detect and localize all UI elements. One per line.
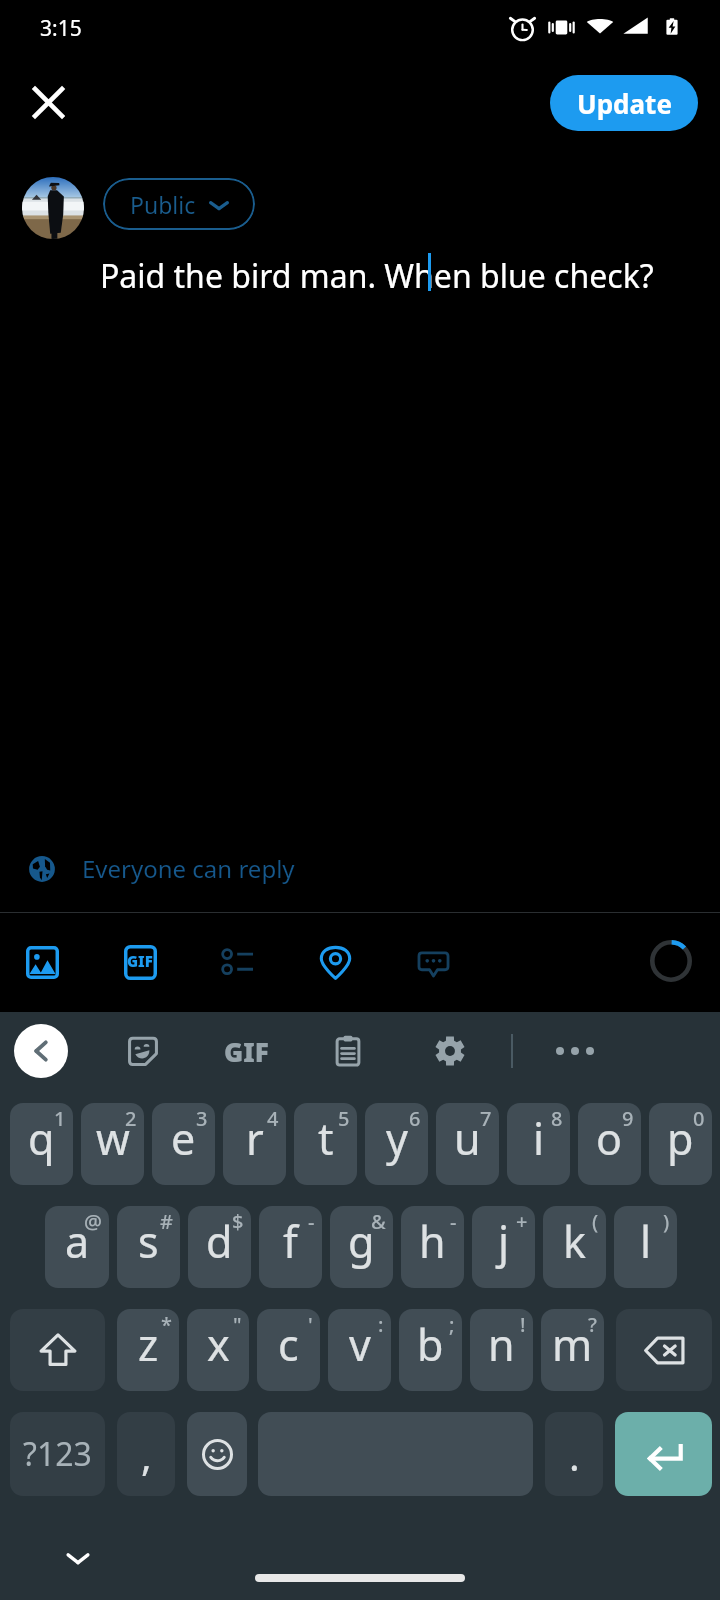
- button[interactable]: q: [10, 1103, 73, 1185]
- button[interactable]: More options: [549, 1025, 601, 1077]
- staticText: x: [207, 1315, 230, 1374]
- staticText: :: [378, 1311, 384, 1338]
- staticText: 3:15: [40, 14, 82, 43]
- button[interactable]: Add photos or video: [15, 935, 69, 989]
- button[interactable]: Reply settings: [406, 935, 460, 989]
- button[interactable]: j: [472, 1206, 535, 1288]
- button[interactable]: u: [436, 1103, 499, 1185]
- staticText: 5: [338, 1105, 350, 1132]
- staticText: Paid the bird man. When blue check?: [100, 254, 654, 298]
- button[interactable]: Shift: [10, 1309, 105, 1391]
- button[interactable]: Character count: [646, 936, 696, 986]
- button[interactable]: Hide keyboard: [56, 1536, 100, 1580]
- staticText: 9: [622, 1105, 634, 1132]
- staticText: s: [138, 1212, 159, 1271]
- button[interactable]: ?123: [10, 1412, 105, 1496]
- staticText: j: [498, 1212, 510, 1271]
- staticText: l: [640, 1212, 652, 1271]
- staticText: r: [246, 1109, 264, 1168]
- button[interactable]: i: [507, 1103, 570, 1185]
- button[interactable]: v: [328, 1309, 391, 1391]
- staticText: y: [386, 1109, 408, 1168]
- button[interactable]: Tag location: [308, 935, 362, 989]
- button[interactable]: Add GIF: [113, 935, 167, 989]
- staticText: c: [278, 1315, 299, 1374]
- staticText: ': [308, 1311, 313, 1338]
- button[interactable]: Clipboard: [322, 1025, 374, 1077]
- staticText: ?123: [23, 1432, 92, 1476]
- button[interactable]: s: [117, 1206, 180, 1288]
- button[interactable]: c: [257, 1309, 320, 1391]
- button[interactable]: f: [259, 1206, 322, 1288]
- staticText: -: [308, 1208, 315, 1235]
- button[interactable]: k: [543, 1206, 606, 1288]
- staticText: 0: [693, 1105, 705, 1132]
- staticText: 4: [267, 1105, 279, 1132]
- staticText: +: [516, 1208, 528, 1235]
- button[interactable]: n: [470, 1309, 533, 1391]
- button[interactable]: w: [81, 1103, 144, 1185]
- staticText: 8: [551, 1105, 563, 1132]
- staticText: .: [569, 1428, 580, 1482]
- button[interactable]: Settings: [424, 1025, 476, 1077]
- button[interactable]: h: [401, 1206, 464, 1288]
- button[interactable]: Stickers: [117, 1025, 169, 1077]
- staticText: i: [533, 1109, 545, 1168]
- button[interactable]: .: [545, 1412, 603, 1496]
- staticText: *: [161, 1311, 172, 1338]
- button[interactable]: Update: [550, 75, 698, 131]
- button[interactable]: Enter: [615, 1412, 712, 1496]
- staticText: GIF: [127, 951, 153, 971]
- staticText: m: [552, 1315, 593, 1374]
- staticText: n: [488, 1315, 515, 1374]
- staticText: ): [663, 1208, 670, 1235]
- button[interactable]: l: [614, 1206, 677, 1288]
- button[interactable]: a: [45, 1206, 109, 1288]
- staticText: #: [160, 1208, 173, 1235]
- staticText: f: [283, 1212, 298, 1271]
- button[interactable]: z: [117, 1309, 179, 1391]
- staticText: 1: [54, 1105, 66, 1132]
- staticText: k: [563, 1212, 586, 1271]
- button[interactable]: x: [187, 1309, 249, 1391]
- button[interactable]: b: [399, 1309, 462, 1391]
- staticText: u: [454, 1109, 481, 1168]
- staticText: ;: [449, 1311, 455, 1338]
- staticText: d: [206, 1212, 233, 1271]
- button[interactable]: Back: [14, 1024, 68, 1078]
- staticText: Update: [577, 86, 672, 121]
- button[interactable]: d: [188, 1206, 251, 1288]
- button[interactable]: Public: [103, 178, 255, 230]
- staticText: ?: [588, 1311, 597, 1338]
- staticText: !: [520, 1311, 526, 1338]
- staticText: 7: [480, 1105, 492, 1132]
- staticText: a: [65, 1212, 90, 1271]
- button[interactable]: r: [223, 1103, 286, 1185]
- staticText: b: [417, 1315, 444, 1374]
- staticText: h: [419, 1212, 446, 1271]
- button[interactable]: Backspace: [616, 1309, 712, 1391]
- staticText: &: [371, 1208, 386, 1235]
- staticText: z: [138, 1315, 159, 1374]
- button[interactable]: Close: [10, 64, 86, 140]
- staticText: GIF: [224, 1034, 269, 1069]
- button[interactable]: Emoji: [187, 1412, 247, 1496]
- button[interactable]: p: [649, 1103, 712, 1185]
- button[interactable]: g: [330, 1206, 393, 1288]
- button[interactable]: m: [541, 1309, 604, 1391]
- button[interactable]: t: [294, 1103, 357, 1185]
- staticText: q: [28, 1109, 55, 1168]
- staticText: @: [84, 1208, 102, 1235]
- button[interactable]: ,: [117, 1412, 175, 1496]
- button[interactable]: o: [578, 1103, 641, 1185]
- staticText: 3: [196, 1105, 208, 1132]
- button[interactable]: Add poll: [211, 935, 265, 989]
- button[interactable]: Profile picture: [22, 177, 84, 239]
- staticText: (: [592, 1208, 599, 1235]
- button[interactable]: y: [365, 1103, 428, 1185]
- button[interactable]: GIF: [220, 1025, 272, 1077]
- staticText: w: [96, 1109, 130, 1168]
- button[interactable]: e: [152, 1103, 215, 1185]
- button[interactable]: Everyone can reply: [0, 824, 720, 912]
